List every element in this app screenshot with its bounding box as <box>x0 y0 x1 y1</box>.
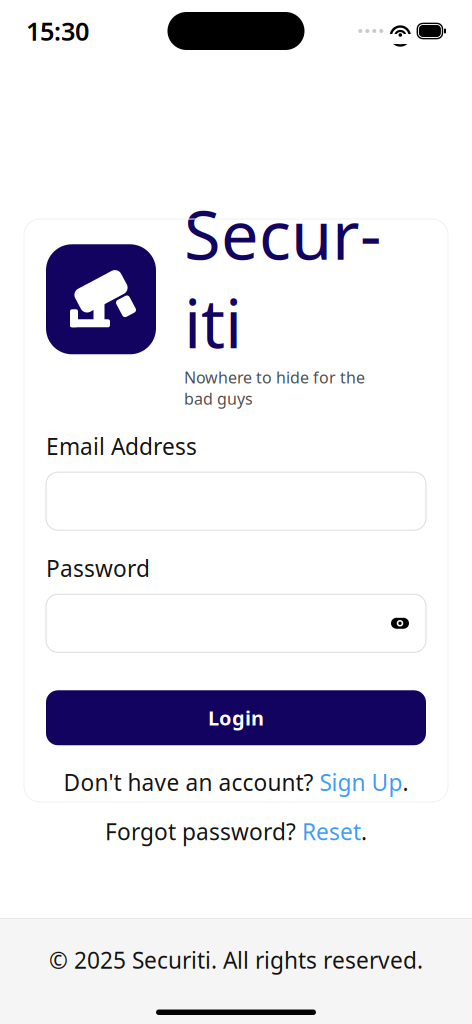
staticText: Email Address <box>46 431 197 461</box>
button[interactable]: Show password <box>384 606 416 640</box>
staticText: © 2025 Securiti. All rights reserved. <box>49 945 423 975</box>
staticText: Nowhere to hide for the bad guys <box>184 367 365 409</box>
staticText: Login <box>208 704 264 731</box>
button[interactable]: Login <box>46 690 426 745</box>
staticText: 15:30 <box>26 14 89 48</box>
staticText: Password <box>46 553 150 583</box>
staticText: Forgot password? <box>105 816 302 846</box>
staticText: Don't have an account? <box>63 767 319 797</box>
staticText: Reset <box>302 816 361 846</box>
staticText: . <box>402 767 408 797</box>
staticText: Securiti <box>184 189 381 367</box>
staticText: Sign Up <box>319 767 402 797</box>
button[interactable]: Sign Up <box>319 767 402 797</box>
staticText: . <box>361 816 367 846</box>
button[interactable]: Reset <box>302 816 361 846</box>
